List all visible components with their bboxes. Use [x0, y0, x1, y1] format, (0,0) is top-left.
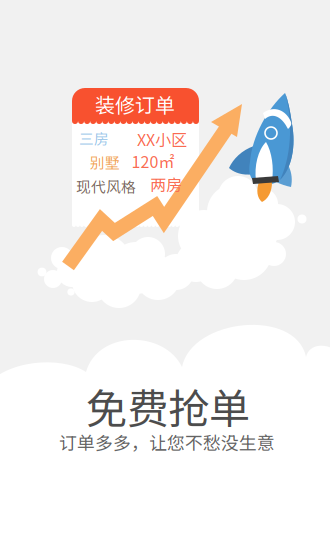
staticText: 120㎡ — [131, 149, 174, 173]
staticText: 装修订单 — [95, 89, 175, 118]
staticText: 两房 — [150, 172, 182, 196]
staticText: 订单多多，让您不愁没生意 — [59, 429, 275, 455]
staticText: 别墅 — [90, 151, 120, 173]
staticText: 免费抢单 — [86, 376, 250, 436]
staticText: XX小区 — [137, 127, 187, 151]
staticText: 三房 — [79, 127, 109, 149]
staticText: 现代风格 — [76, 175, 136, 197]
